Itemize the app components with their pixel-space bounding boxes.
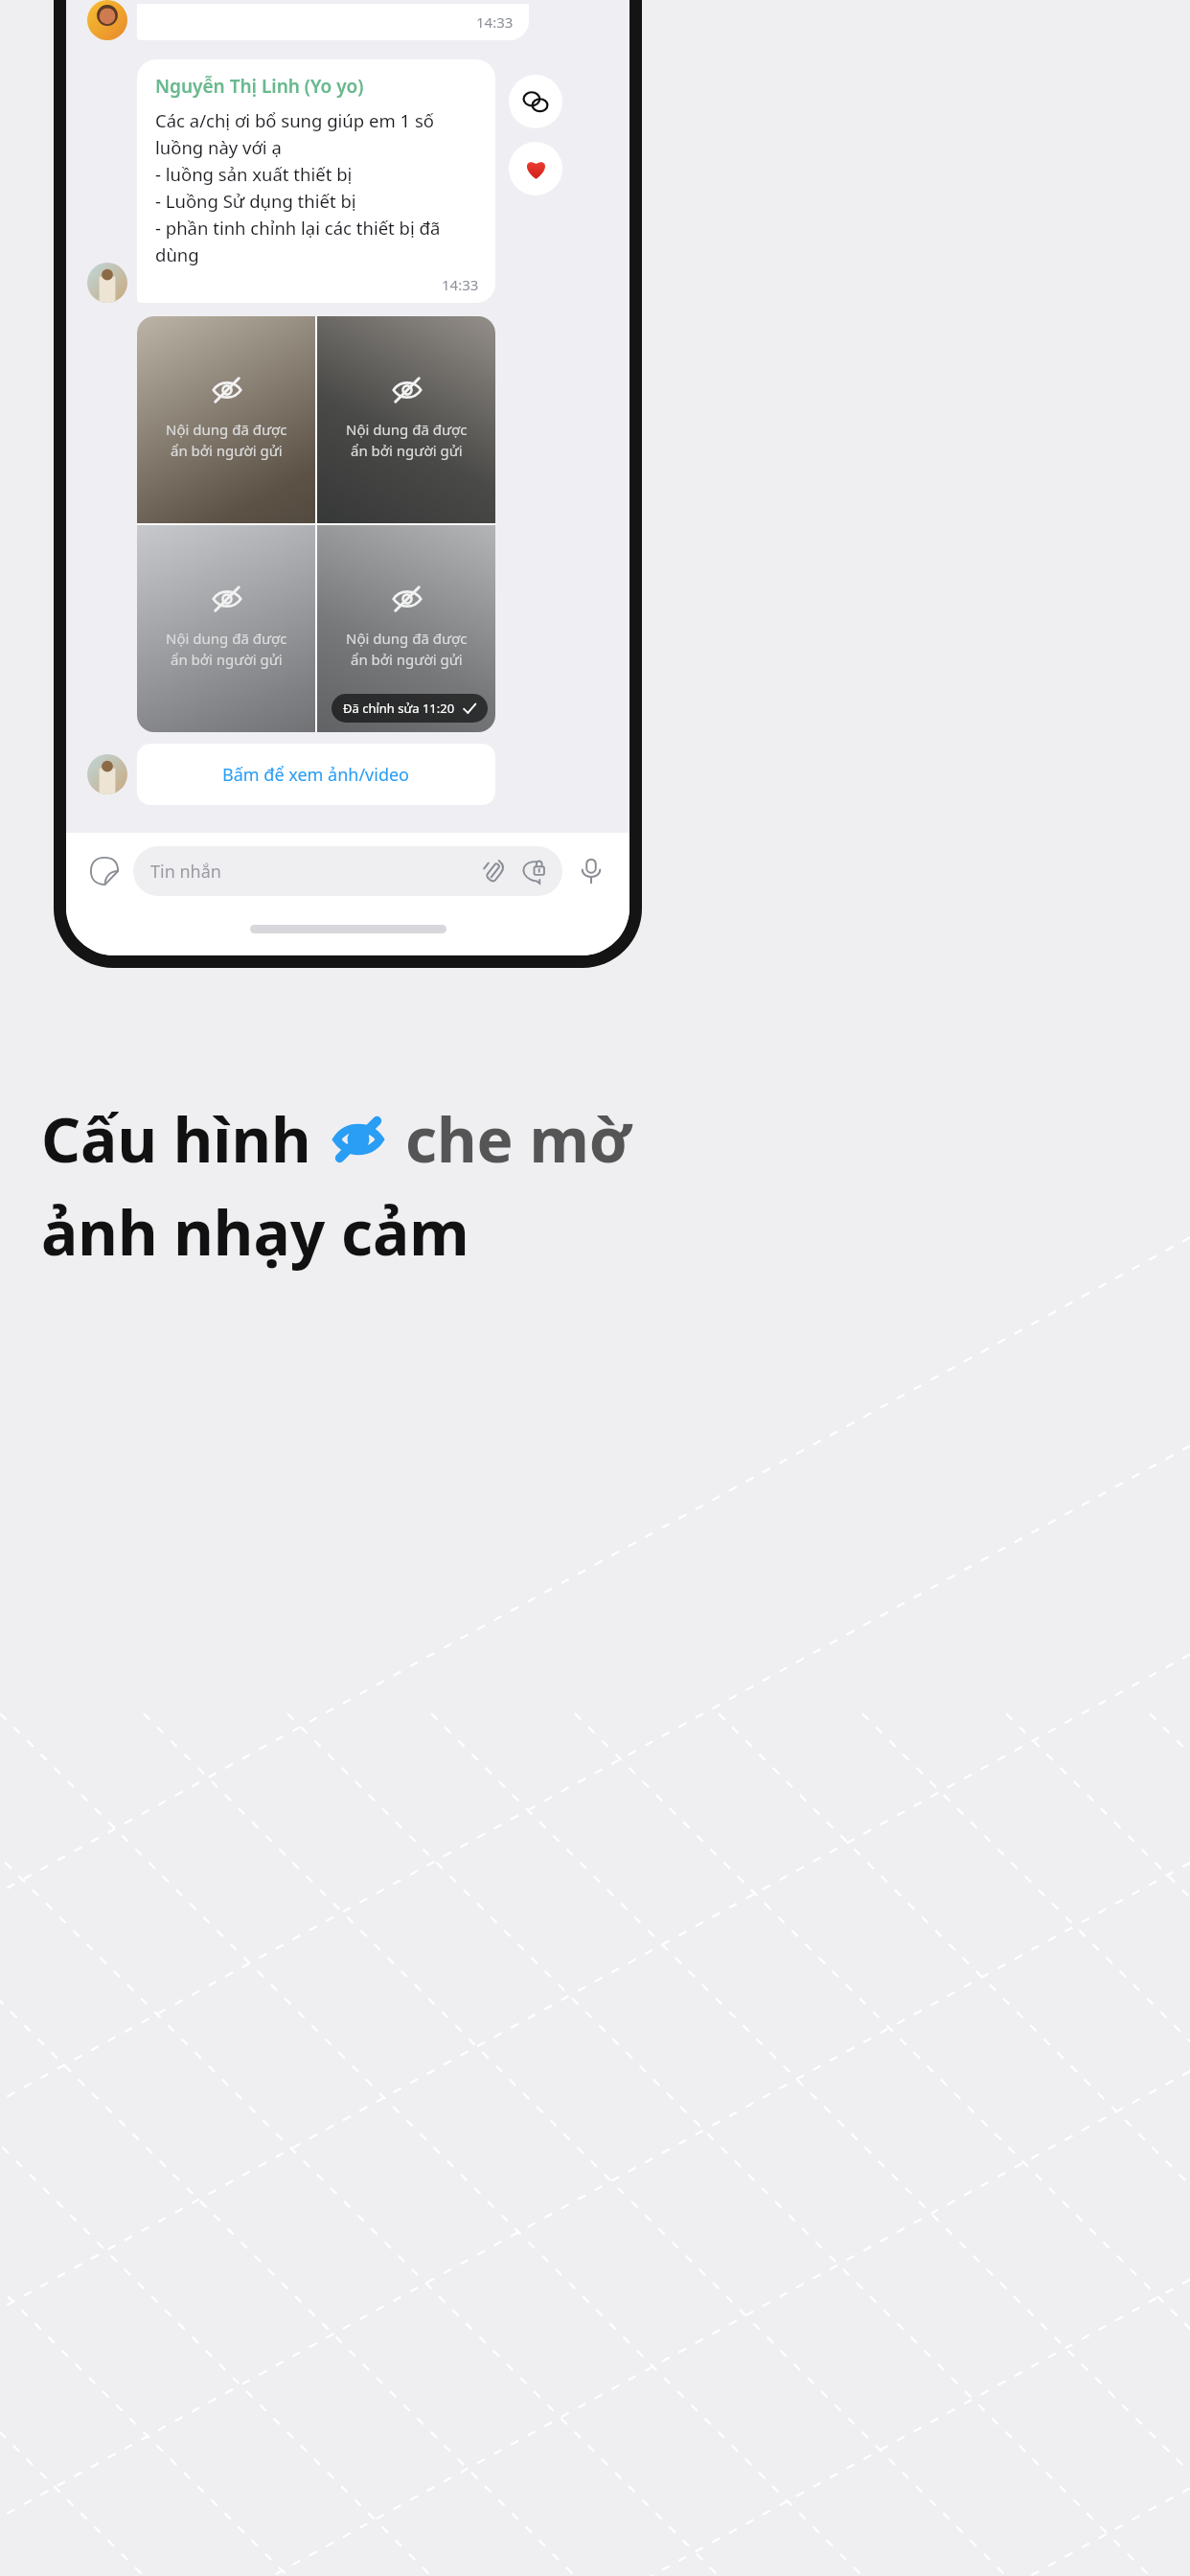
- button[interactable]: Reaction: [509, 142, 562, 195]
- staticText: ảnh nhạy cảm: [41, 1190, 469, 1274]
- button[interactable]: Nội dung đã được: [317, 525, 495, 732]
- button[interactable]: Avatar: [87, 754, 127, 794]
- button[interactable]: Sticker: [83, 850, 126, 892]
- staticText: - phần tinh chỉnh lại các thiết bị đã: [155, 216, 441, 240]
- button[interactable]: Private message: [516, 854, 551, 888]
- staticText: Nội dung đã được: [166, 629, 287, 648]
- button[interactable]: Reaction: [509, 75, 562, 128]
- button[interactable]: Tin nhắn: [133, 846, 562, 896]
- staticText: dùng: [155, 242, 199, 266]
- staticText: Các a/chị ơi bổ sung giúp em 1 số: [155, 108, 434, 132]
- button[interactable]: Avatar: [87, 263, 127, 303]
- staticText: ẩn bởi người gửi: [171, 650, 283, 669]
- staticText: - Luồng Sử dụng thiết bị: [155, 189, 356, 213]
- button[interactable]: 14:33: [137, 4, 529, 40]
- staticText: Nguyễn Thị Linh (Yo yo): [155, 74, 364, 99]
- button[interactable]: Nguyễn Thị Linh (Yo yo): [137, 59, 495, 303]
- staticText: Nội dung đã được: [346, 629, 468, 648]
- staticText: che mờ: [405, 1097, 631, 1181]
- button[interactable]: Avatar: [87, 0, 127, 40]
- staticText: ẩn bởi người gửi: [171, 441, 283, 460]
- staticText: Đã chỉnh sửa 11:20: [343, 700, 455, 717]
- staticText: Nội dung đã được: [346, 420, 468, 439]
- button[interactable]: Nội dung đã được: [137, 525, 315, 732]
- staticText: Bấm để xem ảnh/video: [222, 763, 410, 787]
- staticText: ẩn bởi người gửi: [351, 441, 463, 460]
- button[interactable]: Nội dung đã được: [137, 316, 315, 523]
- staticText: Nội dung đã được: [166, 420, 287, 439]
- staticText: 14:33: [476, 12, 514, 32]
- button[interactable]: Voice message: [570, 850, 612, 892]
- staticText: ẩn bởi người gửi: [351, 650, 463, 669]
- staticText: luồng này với ạ: [155, 135, 282, 159]
- button[interactable]: Attach file: [478, 854, 513, 888]
- button[interactable]: Nội dung đã được: [317, 316, 495, 523]
- button[interactable]: Bấm để xem ảnh/video: [137, 744, 495, 805]
- staticText: - luồng sản xuất thiết bị: [155, 162, 353, 186]
- staticText: Cấu hình: [41, 1097, 311, 1181]
- staticText: Tin nhắn: [150, 860, 221, 884]
- staticText: 14:33: [442, 275, 479, 294]
